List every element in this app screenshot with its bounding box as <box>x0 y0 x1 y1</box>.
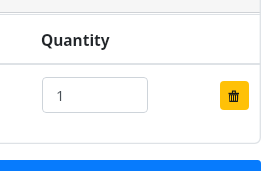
button[interactable]: Primary action <box>0 160 261 171</box>
button[interactable]: Delete <box>220 81 249 110</box>
staticText: Quantity <box>41 29 110 50</box>
staticText: 1 <box>56 85 65 105</box>
button[interactable]: 1 <box>42 77 148 113</box>
